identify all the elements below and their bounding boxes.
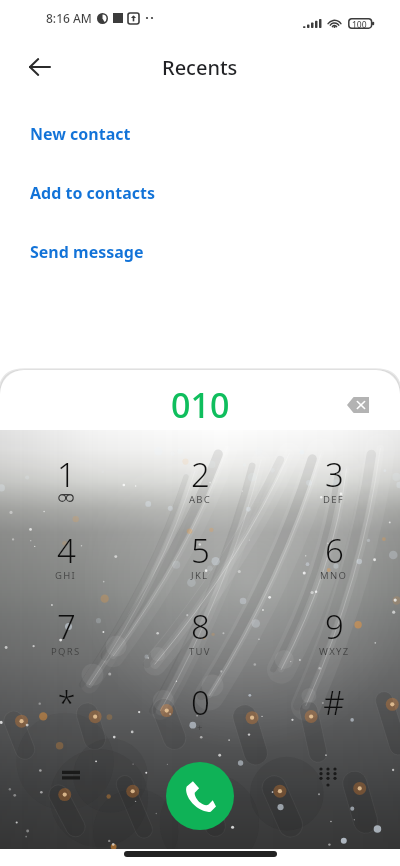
staticText: 2 (191, 452, 210, 497)
staticText: 1 (57, 452, 76, 497)
staticText: 5 (191, 528, 210, 573)
button[interactable]: 7 (24, 594, 108, 660)
button[interactable]: Add to contacts (0, 163, 400, 222)
button[interactable]: Options (51, 755, 91, 795)
staticText: 6 (325, 528, 344, 573)
staticText: New contact (30, 123, 131, 145)
staticText: GHI (55, 569, 77, 582)
staticText: 8 (191, 604, 210, 649)
staticText: 100 (352, 19, 367, 31)
button[interactable]: 3 (292, 442, 376, 508)
staticText: WXYZ (319, 645, 350, 658)
button[interactable]: New contact (0, 104, 400, 163)
button[interactable]: Backspace (340, 387, 376, 423)
staticText: TUV (189, 645, 211, 658)
button[interactable]: # (292, 670, 376, 736)
staticText: # (323, 680, 345, 725)
staticText: PQRS (51, 645, 81, 658)
button[interactable]: 1 (24, 442, 108, 508)
button[interactable]: 5 (158, 518, 242, 584)
staticText: Send message (30, 241, 144, 263)
button[interactable]: Send message (0, 222, 400, 281)
button[interactable]: 8 (158, 594, 242, 660)
staticText: Add to contacts (30, 182, 155, 204)
staticText: Recents (162, 54, 238, 81)
staticText: ABC (189, 493, 212, 506)
staticText: JKL (191, 569, 209, 582)
button[interactable]: 9 (292, 594, 376, 660)
staticText: * (57, 680, 76, 725)
staticText: 8:16 AM (46, 10, 92, 26)
staticText: 4 (57, 528, 76, 573)
staticText: 7 (57, 604, 76, 649)
staticText: 9 (325, 604, 344, 649)
staticText: 0 (191, 680, 210, 725)
staticText: 3 (325, 452, 344, 497)
button[interactable]: Call (166, 762, 234, 830)
button[interactable]: 6 (292, 518, 376, 584)
button[interactable]: 2 (158, 442, 242, 508)
staticText: + (197, 721, 204, 734)
staticText: MNO (320, 569, 348, 582)
button[interactable]: Back (16, 43, 64, 91)
button[interactable]: 4 (24, 518, 108, 584)
button[interactable]: * (24, 670, 108, 736)
button[interactable]: Keypad (308, 757, 348, 797)
button[interactable]: 0 (158, 670, 242, 736)
staticText: 010 (171, 382, 230, 428)
staticText: DEF (323, 493, 345, 506)
